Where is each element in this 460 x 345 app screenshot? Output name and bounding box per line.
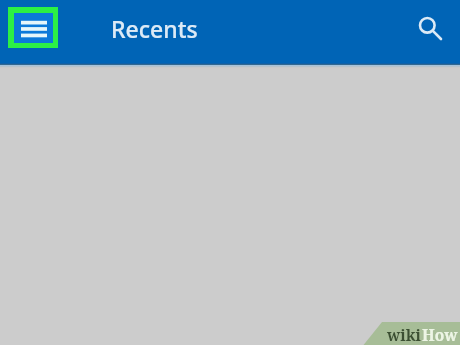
button[interactable]: Search — [407, 5, 449, 47]
staticText: How — [422, 324, 458, 345]
button[interactable]: Open navigation menu — [8, 7, 58, 48]
staticText: Recents — [111, 13, 198, 44]
staticText: wiki — [387, 324, 422, 345]
